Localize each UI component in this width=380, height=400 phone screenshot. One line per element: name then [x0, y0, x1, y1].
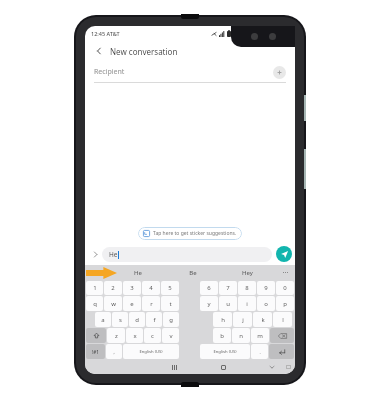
staticText: o — [264, 300, 268, 308]
button[interactable]: b — [213, 328, 231, 343]
staticText: b — [220, 332, 224, 340]
button[interactable]: English (US) — [123, 344, 179, 359]
button[interactable]: 0 — [276, 281, 294, 295]
staticText: 1 — [93, 284, 97, 292]
staticText: v — [169, 332, 173, 340]
staticText: k — [261, 316, 265, 324]
button[interactable]: He — [102, 247, 272, 262]
button[interactable]: . — [251, 344, 268, 359]
button[interactable]: v — [162, 328, 179, 343]
staticText: 2 — [111, 284, 115, 292]
button[interactable]: English (US) — [200, 344, 250, 359]
button[interactable]: h — [213, 312, 232, 327]
staticText: He — [134, 269, 142, 277]
staticText: g — [169, 316, 173, 324]
button[interactable]: u — [219, 296, 237, 311]
staticText: Tap here to get sticker suggestions. — [153, 230, 237, 237]
button[interactable]: e — [123, 296, 141, 311]
staticText: 9 — [264, 284, 268, 292]
button[interactable]: q — [86, 296, 103, 311]
button[interactable]: t — [161, 296, 179, 311]
button[interactable]: c — [144, 328, 161, 343]
button[interactable]: Enter — [269, 344, 294, 359]
button[interactable]: Recents — [167, 360, 181, 374]
staticText: !#1 — [92, 349, 99, 355]
button[interactable]: x — [126, 328, 143, 343]
button[interactable]: w — [104, 296, 122, 311]
button[interactable]: Hide keyboard — [265, 360, 279, 374]
staticText: 0 — [283, 284, 287, 292]
staticText: 8 — [245, 284, 249, 292]
button[interactable]: 4 — [142, 281, 160, 295]
button[interactable]: i — [238, 296, 256, 311]
staticText: w — [111, 300, 116, 308]
button[interactable]: n — [232, 328, 250, 343]
button[interactable]: 9 — [257, 281, 275, 295]
staticText: English (US) — [213, 349, 237, 355]
staticText: h — [221, 316, 225, 324]
staticText: m — [257, 332, 263, 340]
staticText: z — [115, 332, 118, 340]
button[interactable]: 8 — [238, 281, 256, 295]
button[interactable]: Hey — [220, 265, 275, 280]
button[interactable]: More suggestions — [275, 265, 295, 280]
staticText: l — [282, 316, 284, 324]
staticText: e — [130, 300, 134, 308]
button[interactable]: Add recipient — [273, 66, 286, 79]
button[interactable]: Be — [165, 265, 220, 280]
button[interactable]: Back — [91, 43, 107, 59]
button[interactable]: g — [163, 312, 179, 327]
button[interactable]: k — [253, 312, 272, 327]
button[interactable]: He — [111, 265, 165, 280]
staticText: English (US) — [139, 349, 163, 355]
staticText: s — [119, 316, 122, 324]
button[interactable]: Tap here to get sticker suggestions. — [138, 227, 242, 240]
button[interactable]: Symbols — [86, 344, 105, 359]
button[interactable]: d — [129, 312, 145, 327]
button[interactable]: 7 — [219, 281, 237, 295]
button[interactable]: o — [257, 296, 275, 311]
button[interactable]: y — [200, 296, 218, 311]
button[interactable]: p — [276, 296, 294, 311]
button[interactable]: Expand options — [88, 247, 102, 261]
staticText: q — [93, 300, 97, 308]
button[interactable]: z — [107, 328, 125, 343]
button[interactable]: 2 — [104, 281, 122, 295]
staticText: y — [207, 300, 211, 308]
button[interactable]: s — [112, 312, 128, 327]
button[interactable]: a — [95, 312, 111, 327]
staticText: x — [133, 332, 137, 340]
staticText: New conversation — [110, 46, 178, 57]
button[interactable]: l — [273, 312, 292, 327]
button[interactable]: m — [251, 328, 269, 343]
button[interactable]: Shift — [86, 328, 106, 343]
button[interactable]: 1 — [86, 281, 103, 295]
button[interactable]: , — [106, 344, 122, 359]
button[interactable]: Backspace — [270, 328, 294, 343]
staticText: . — [259, 349, 261, 355]
button[interactable]: Home — [216, 360, 230, 374]
staticText: p — [283, 300, 287, 308]
button[interactable]: 5 — [161, 281, 179, 295]
staticText: , — [113, 349, 115, 355]
staticText: 7 — [226, 284, 230, 292]
staticText: i — [246, 300, 248, 308]
button[interactable]: j — [233, 312, 252, 327]
staticText: u — [226, 300, 230, 308]
button[interactable]: Send — [276, 246, 292, 262]
staticText: j — [242, 316, 244, 324]
staticText: He — [109, 250, 118, 259]
button[interactable]: Keyboard layout — [283, 362, 293, 372]
button[interactable]: r — [142, 296, 160, 311]
staticText: 12:45 AT&T — [91, 30, 120, 37]
staticText: Hey — [242, 269, 253, 277]
button[interactable]: f — [146, 312, 162, 327]
staticText: a — [101, 316, 105, 324]
staticText: r — [150, 300, 153, 308]
button[interactable]: 3 — [123, 281, 141, 295]
staticText: 5 — [168, 284, 172, 292]
button[interactable]: 6 — [200, 281, 218, 295]
staticText: 3 — [130, 284, 134, 292]
staticText: 6 — [207, 284, 211, 292]
staticText: Recipient — [94, 67, 273, 77]
